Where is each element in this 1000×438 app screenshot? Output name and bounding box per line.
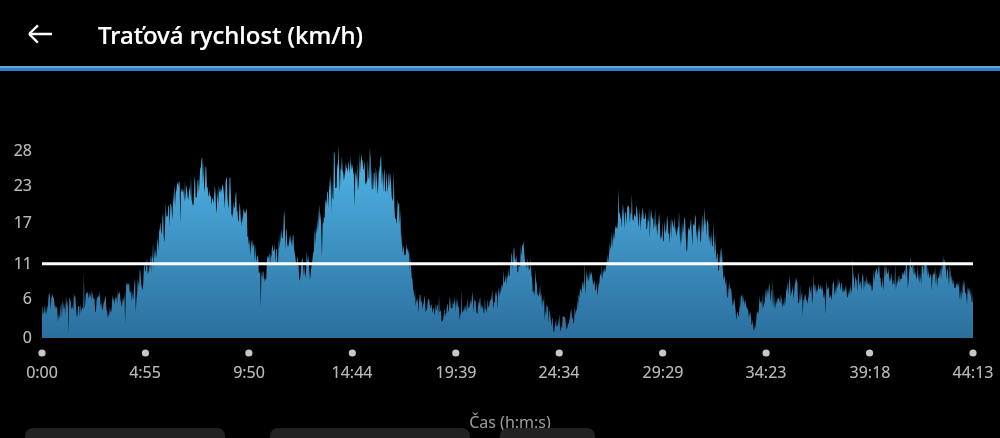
staticText: 0:00 xyxy=(2,361,82,383)
button[interactable]: Option 3 xyxy=(500,428,595,438)
staticText: 23 xyxy=(0,174,32,196)
staticText: 29:29 xyxy=(623,361,703,383)
staticText: Traťová rychlost (km/h) xyxy=(98,18,363,51)
staticText: 14:44 xyxy=(312,361,392,383)
staticText: 0 xyxy=(0,326,32,348)
staticText: 39:18 xyxy=(830,361,910,383)
button[interactable]: Back xyxy=(16,10,64,58)
button[interactable]: Option 2 xyxy=(270,428,470,438)
staticText: 9:50 xyxy=(209,361,289,383)
staticText: 6 xyxy=(0,287,32,309)
staticText: 34:23 xyxy=(726,361,806,383)
staticText: 24:34 xyxy=(519,361,599,383)
staticText: 28 xyxy=(0,139,32,161)
staticText: 11 xyxy=(0,252,32,274)
staticText: 19:39 xyxy=(416,361,496,383)
button[interactable]: Option 1 xyxy=(25,428,225,438)
staticText: 17 xyxy=(0,211,32,233)
staticText: Čas (h:m:s) xyxy=(10,411,1000,433)
staticText: 44:13 xyxy=(933,361,1000,383)
staticText: 4:55 xyxy=(105,361,185,383)
